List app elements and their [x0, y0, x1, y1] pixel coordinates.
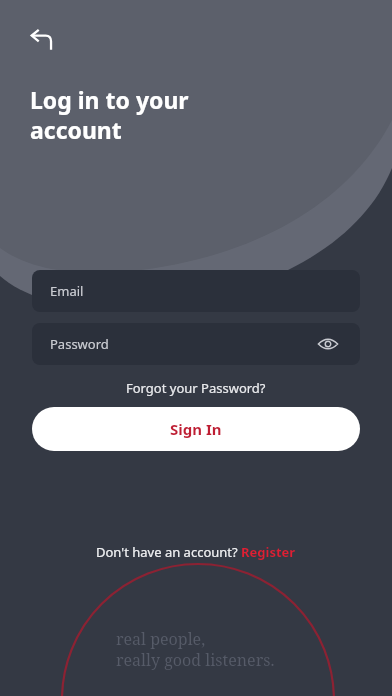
staticText: Forgot your Password? [126, 379, 266, 397]
button[interactable]: Email [32, 270, 360, 312]
staticText: real people, really good listeners. [116, 628, 275, 671]
button[interactable]: Password [32, 323, 360, 365]
button[interactable]: Sign In [32, 407, 360, 451]
button[interactable]: Back [22, 18, 66, 62]
staticText: Log in to your account [30, 84, 189, 145]
button[interactable]: Show password [314, 330, 342, 358]
staticText: Email [50, 282, 84, 300]
staticText: Sign In [170, 419, 222, 439]
staticText: Password [50, 335, 109, 353]
button[interactable]: Forgot your Password? [120, 377, 272, 399]
button[interactable]: Don't have an account? Register [96, 543, 296, 561]
staticText: Don't have an account? Register [96, 543, 296, 561]
